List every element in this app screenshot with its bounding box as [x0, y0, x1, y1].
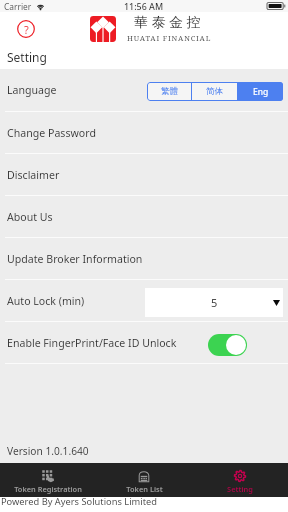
- staticText: About Us: [7, 210, 53, 224]
- button[interactable]: About Us: [0, 196, 288, 237]
- staticText: Setting: [7, 49, 47, 65]
- button[interactable]: 简体: [192, 82, 237, 101]
- staticText: Version 1.0.1.640: [7, 444, 89, 458]
- button[interactable]: Disclaimer: [0, 154, 288, 195]
- staticText: Eng: [253, 86, 269, 98]
- staticText: Language: [7, 83, 57, 97]
- staticText: Enable FingerPrint/Face ID Unlock: [7, 336, 177, 350]
- staticText: Token List: [126, 484, 163, 494]
- staticText: 5: [211, 295, 218, 310]
- staticText: Setting: [227, 484, 253, 494]
- button[interactable]: Enable FingerPrint or Face ID Unlock: [208, 334, 247, 356]
- button[interactable]: 5: [145, 288, 283, 317]
- button[interactable]: 繁體: [147, 82, 191, 101]
- staticText: Carrier: [4, 1, 32, 12]
- button[interactable]: Token List: [96, 463, 192, 497]
- staticText: 简体: [206, 86, 223, 97]
- staticText: Update Broker Information: [7, 252, 143, 266]
- staticText: Disclaimer: [7, 168, 60, 182]
- staticText: HUATAI FINANCIAL: [127, 33, 212, 43]
- button[interactable]: Eng: [238, 82, 283, 101]
- button[interactable]: Update Broker Information: [0, 238, 288, 279]
- staticText: 11:56 AM: [124, 0, 164, 12]
- staticText: 華泰金控: [134, 14, 205, 32]
- staticText: Change Password: [7, 126, 96, 140]
- staticText: Token Registration: [14, 484, 82, 494]
- button[interactable]: Help: [17, 20, 35, 38]
- button[interactable]: Token Registration: [0, 463, 96, 497]
- staticText: ?: [24, 22, 29, 37]
- button[interactable]: Change Password: [0, 112, 288, 153]
- staticText: Powered By Ayers Solutions Limited: [1, 495, 158, 508]
- staticText: 繁體: [161, 86, 178, 97]
- button[interactable]: Setting: [192, 463, 288, 497]
- staticText: Auto Lock (min): [7, 294, 85, 308]
